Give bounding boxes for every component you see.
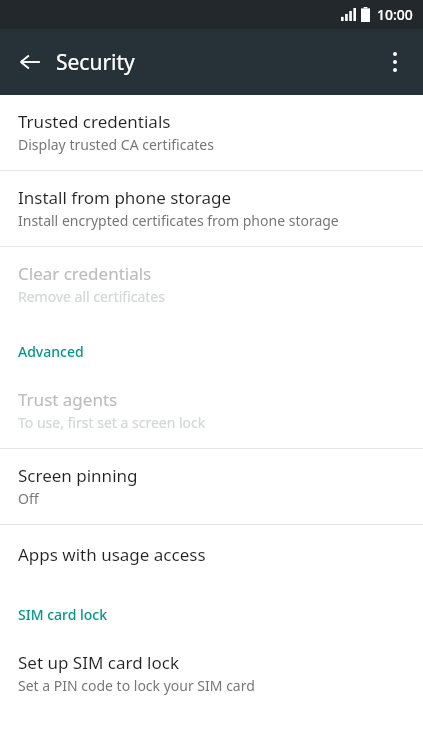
staticText: Apps with usage access [18,543,206,566]
staticText: Screen pinning [18,464,138,487]
staticText: To use, first set a screen lock [18,413,206,432]
staticText: 10:00 [377,5,413,24]
staticText: SIM card lock [18,605,108,624]
staticText: Trust agents [18,388,118,411]
button[interactable]: Set up SIM card lock [0,636,423,711]
staticText: Display trusted CA certificates [18,135,214,154]
button[interactable]: Trusted credentials [0,95,423,170]
button[interactable]: Clear credentials [0,247,423,322]
button[interactable]: Back [6,38,54,86]
button[interactable]: Apps with usage access [0,525,423,585]
button[interactable]: Install from phone storage [0,171,423,246]
staticText: Off [18,489,39,508]
button[interactable]: Trust agents [0,373,423,448]
staticText: Trusted credentials [18,110,171,133]
staticText: Set a PIN code to lock your SIM card [18,676,255,695]
staticText: Install encrypted certificates from phon… [18,211,339,230]
button[interactable]: More options [371,38,419,86]
button[interactable]: Screen pinning [0,449,423,524]
staticText: Advanced [18,342,84,361]
staticText: Security [56,48,135,77]
staticText: Set up SIM card lock [18,651,179,674]
staticText: Remove all certificates [18,287,165,306]
staticText: Install from phone storage [18,186,231,209]
staticText: Clear credentials [18,262,152,285]
